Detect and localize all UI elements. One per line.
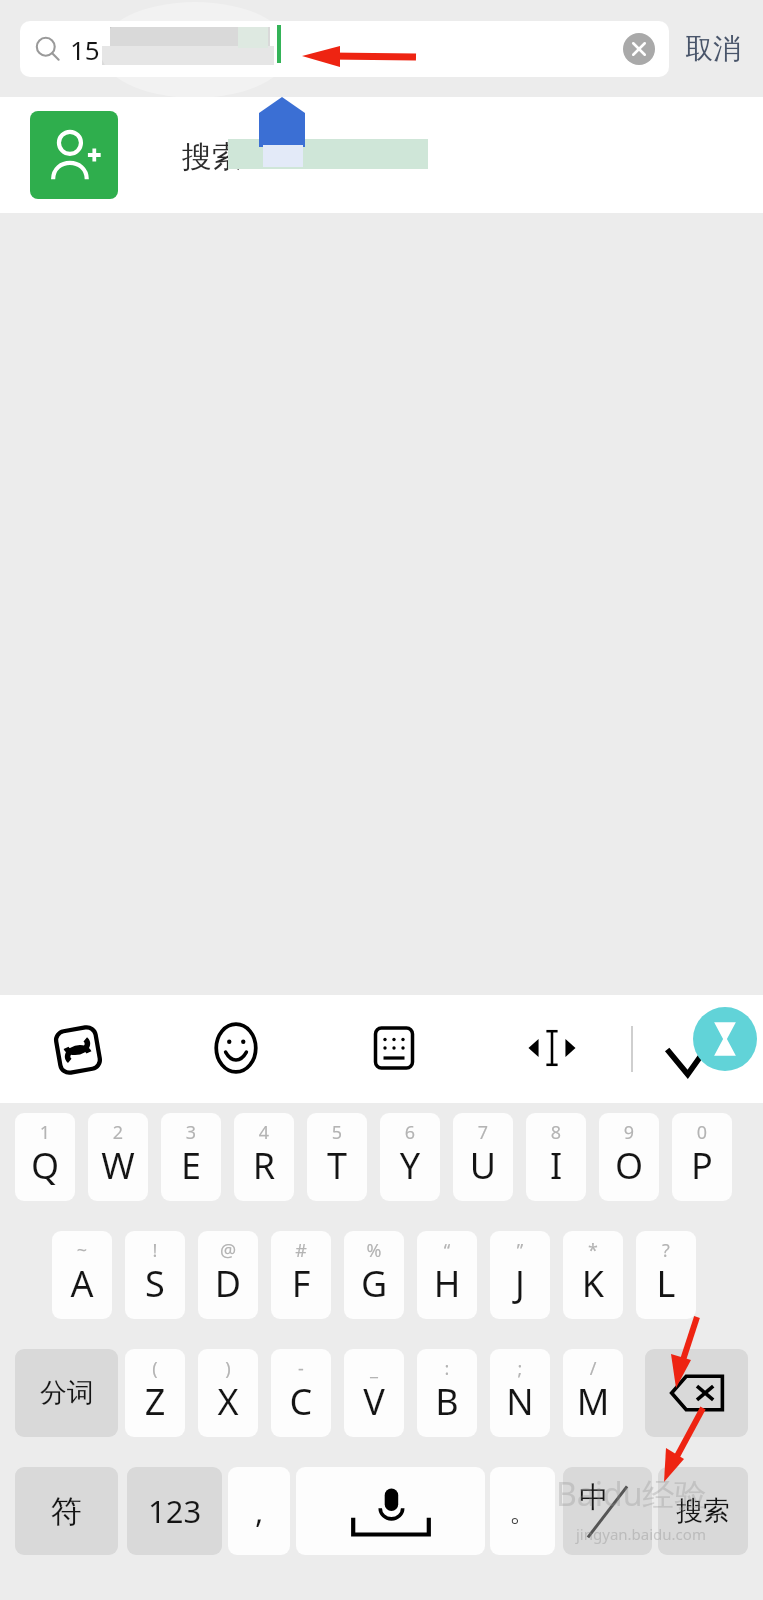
button[interactable]: -: [271, 1349, 331, 1437]
staticText: jingyan.baidu.com: [576, 1524, 706, 1544]
button[interactable]: 15: [20, 21, 669, 77]
staticText: 2: [88, 1120, 148, 1145]
staticText: “: [417, 1238, 477, 1263]
button[interactable]: Emoji: [203, 1015, 269, 1081]
button[interactable]: (: [125, 1349, 185, 1437]
button[interactable]: _: [344, 1349, 404, 1437]
button[interactable]: #: [271, 1231, 331, 1319]
staticText: L: [636, 1259, 696, 1308]
staticText: K: [563, 1259, 623, 1308]
staticText: 中: [579, 1479, 608, 1516]
button[interactable]: Move cursor: [519, 1015, 585, 1081]
staticText: (: [125, 1356, 185, 1381]
button[interactable]: Sogou input method: [45, 1017, 111, 1083]
staticText: 0: [672, 1120, 732, 1145]
button[interactable]: 9: [599, 1113, 659, 1201]
button[interactable]: 2: [88, 1113, 148, 1201]
staticText: B: [417, 1377, 477, 1426]
staticText: ;: [490, 1356, 550, 1381]
button[interactable]: @: [198, 1231, 258, 1319]
staticText: 6: [380, 1120, 440, 1145]
staticText: G: [344, 1259, 404, 1308]
staticText: 搜索: [676, 1494, 730, 1528]
staticText: C: [271, 1377, 331, 1426]
button[interactable]: Switch keyboard layout: [361, 1015, 427, 1081]
staticText: M: [563, 1377, 623, 1426]
button[interactable]: 搜索: [658, 1467, 748, 1555]
button[interactable]: !: [125, 1231, 185, 1319]
staticText: *: [563, 1238, 623, 1263]
staticText: T: [307, 1141, 367, 1190]
button[interactable]: ~: [52, 1231, 112, 1319]
staticText: 3: [161, 1120, 221, 1145]
button[interactable]: 0: [672, 1113, 732, 1201]
button[interactable]: 。: [490, 1467, 555, 1555]
staticText: ”: [490, 1238, 550, 1263]
staticText: O: [599, 1141, 659, 1190]
staticText: F: [271, 1259, 331, 1308]
button[interactable]: ;: [490, 1349, 550, 1437]
staticText: N: [490, 1377, 550, 1426]
staticText: :: [417, 1356, 477, 1381]
button[interactable]: 符: [15, 1467, 118, 1555]
staticText: /: [563, 1356, 623, 1381]
staticText: R: [234, 1141, 294, 1190]
staticText: U: [453, 1141, 513, 1190]
staticText: 取消: [685, 31, 741, 66]
staticText: 15: [70, 32, 100, 67]
staticText: A: [52, 1259, 112, 1308]
button[interactable]: *: [563, 1231, 623, 1319]
staticText: Baidu经验: [556, 1472, 707, 1516]
button[interactable]: “: [417, 1231, 477, 1319]
staticText: 123: [148, 1490, 202, 1532]
button[interactable]: Backspace: [645, 1349, 748, 1437]
button[interactable]: ?: [636, 1231, 696, 1319]
staticText: #: [271, 1238, 331, 1263]
button[interactable]: 分词: [15, 1349, 118, 1437]
button[interactable]: 123: [127, 1467, 222, 1555]
staticText: 4: [234, 1120, 294, 1145]
staticText: 5: [307, 1120, 367, 1145]
staticText: 9: [599, 1120, 659, 1145]
staticText: S: [125, 1259, 185, 1308]
staticText: ): [198, 1356, 258, 1381]
staticText: 7: [453, 1120, 513, 1145]
staticText: P: [672, 1141, 732, 1190]
button[interactable]: :: [417, 1349, 477, 1437]
staticText: I: [526, 1141, 586, 1190]
staticText: Z: [125, 1377, 185, 1426]
button[interactable]: /: [563, 1349, 623, 1437]
button[interactable]: 7: [453, 1113, 513, 1201]
button[interactable]: Hide keyboard: [655, 1003, 763, 1095]
staticText: W: [88, 1141, 148, 1190]
staticText: !: [125, 1238, 185, 1263]
button[interactable]: 6: [380, 1113, 440, 1201]
button[interactable]: 取消: [669, 31, 745, 66]
button[interactable]: 3: [161, 1113, 221, 1201]
button[interactable]: ): [198, 1349, 258, 1437]
button[interactable]: ”: [490, 1231, 550, 1319]
staticText: Q: [15, 1141, 75, 1190]
staticText: 8: [526, 1120, 586, 1145]
staticText: 分词: [40, 1376, 94, 1410]
staticText: 。: [509, 1494, 537, 1529]
button[interactable]: 搜索:: [0, 97, 763, 213]
button[interactable]: 8: [526, 1113, 586, 1201]
staticText: V: [344, 1377, 404, 1426]
staticText: D: [198, 1259, 258, 1308]
button[interactable]: Space, voice input: [296, 1467, 485, 1555]
staticText: J: [490, 1259, 550, 1308]
button[interactable]: Clear search text: [623, 33, 655, 65]
staticText: ?: [636, 1238, 696, 1263]
button[interactable]: ,: [228, 1467, 290, 1555]
staticText: 1: [15, 1120, 75, 1145]
staticText: -: [271, 1356, 331, 1381]
button[interactable]: %: [344, 1231, 404, 1319]
staticText: E: [161, 1141, 221, 1190]
button[interactable]: 1: [15, 1113, 75, 1201]
staticText: 搜索:: [182, 135, 251, 176]
staticText: @: [198, 1238, 258, 1263]
button[interactable]: 5: [307, 1113, 367, 1201]
button[interactable]: 4: [234, 1113, 294, 1201]
button[interactable]: Switch Chinese English input: [563, 1467, 652, 1555]
